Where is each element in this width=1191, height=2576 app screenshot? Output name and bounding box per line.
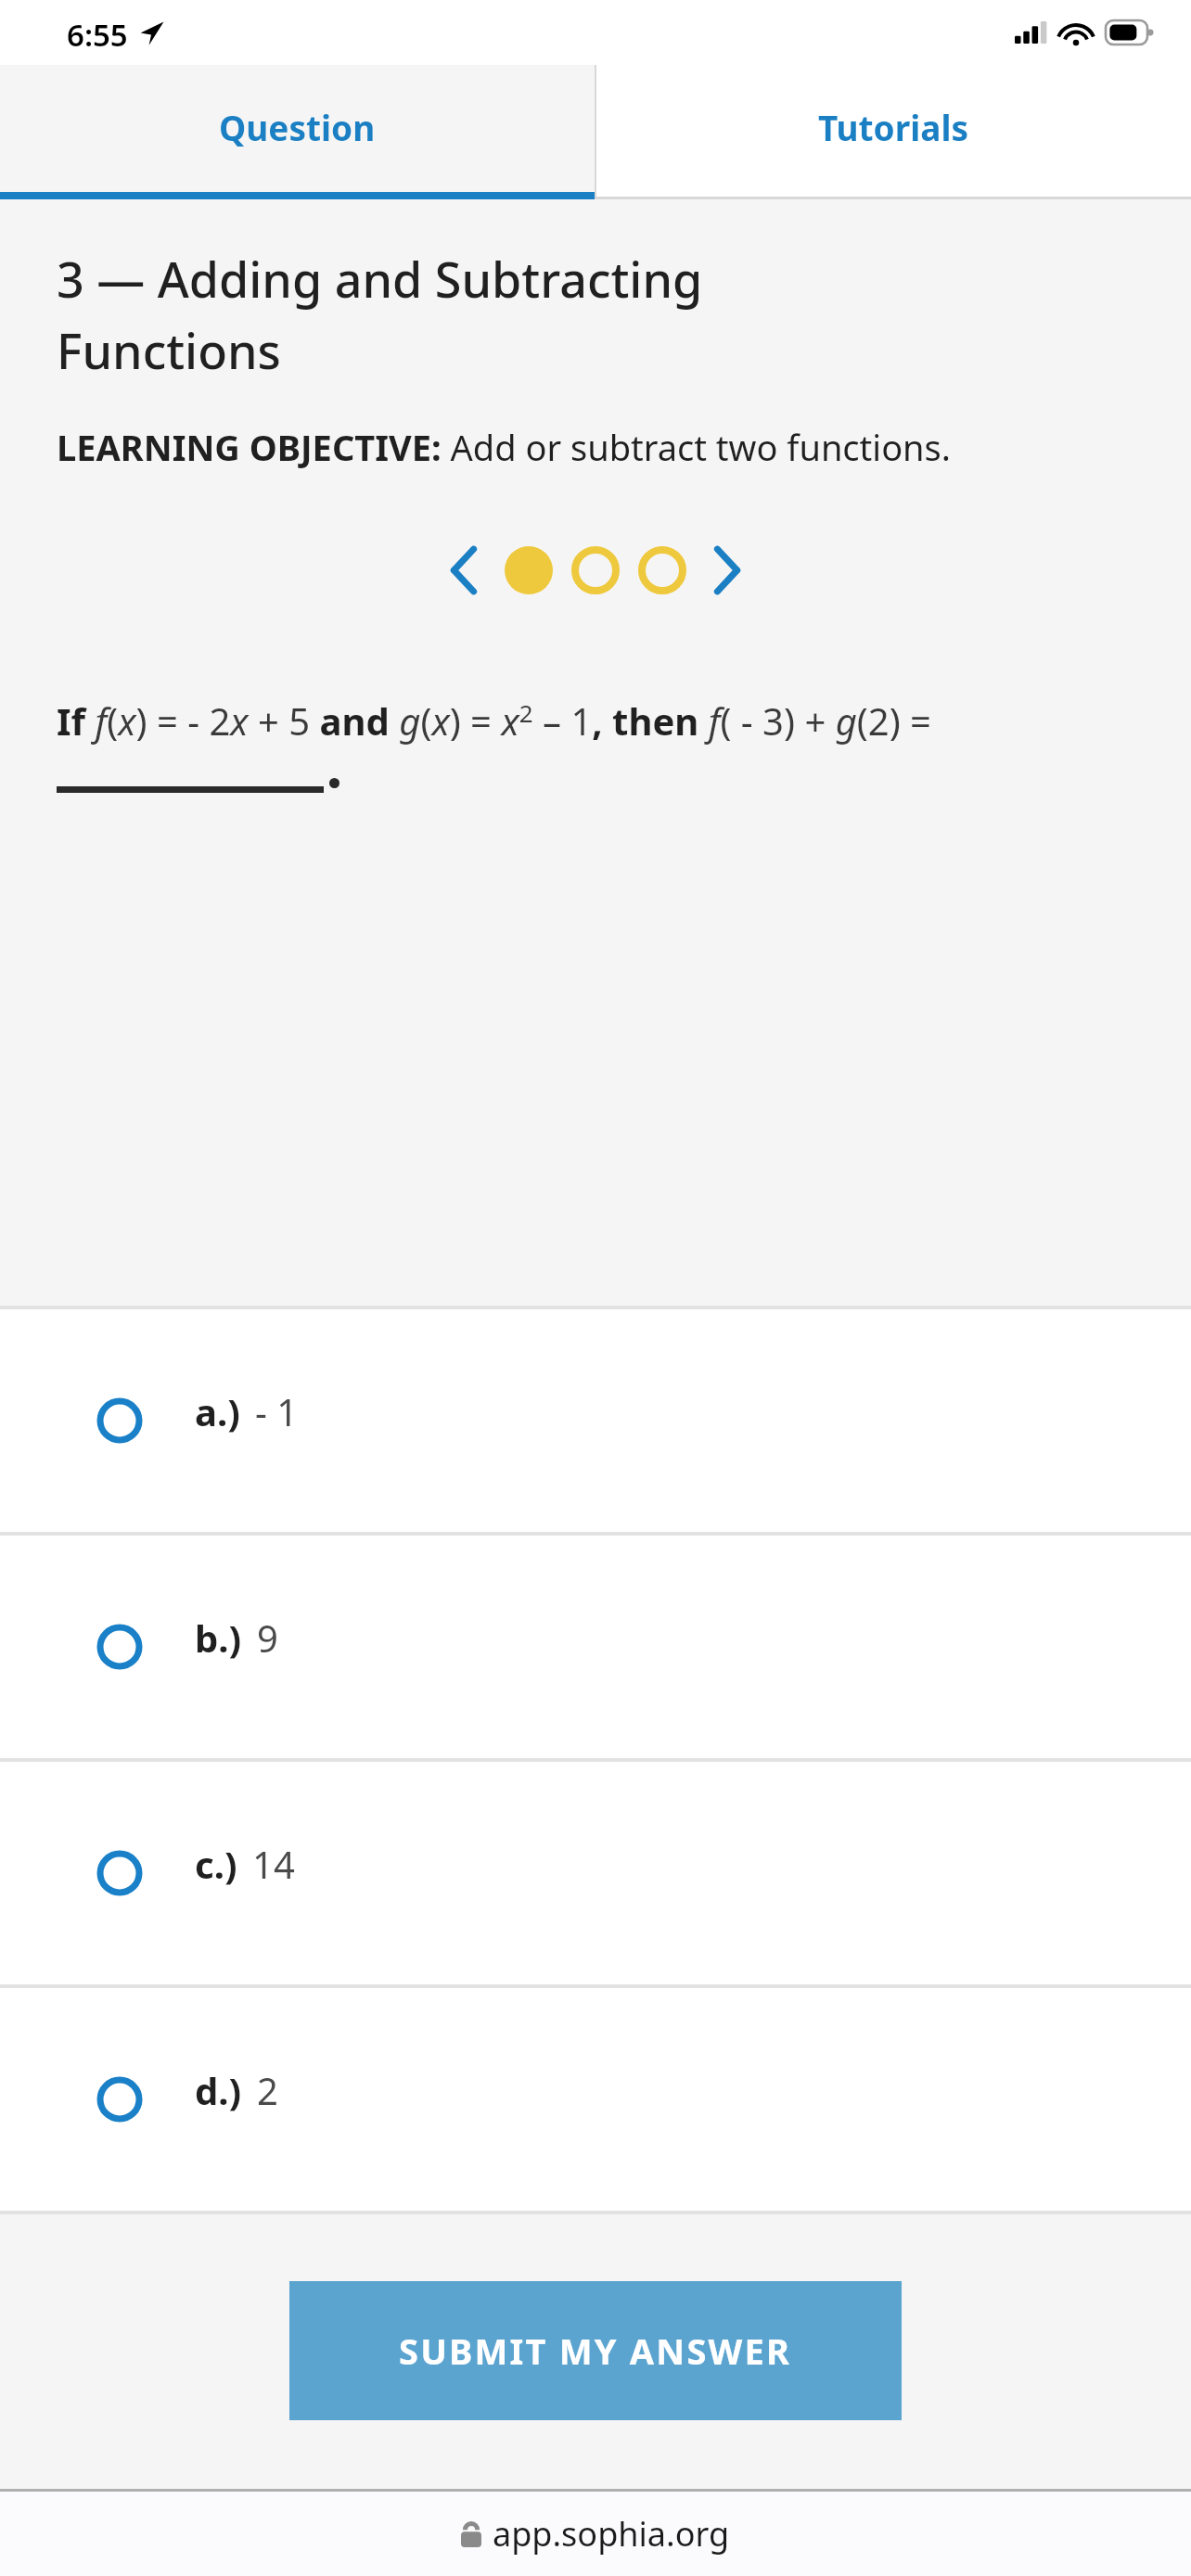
button[interactable]: SUBMIT MY ANSWER — [289, 2281, 902, 2420]
button[interactable]: Next — [701, 538, 753, 603]
staticText: b.) — [195, 1613, 242, 1663]
staticText: 9 — [257, 1613, 278, 1663]
staticText: c.) — [195, 1839, 237, 1889]
button[interactable]: c.) — [0, 1762, 1191, 1984]
staticText: Question — [219, 104, 376, 150]
staticText: Tutorials — [818, 104, 969, 150]
staticText: a.) — [195, 1386, 240, 1436]
staticText: d.) — [195, 2065, 242, 2115]
button[interactable]: a.) — [0, 1309, 1191, 1532]
staticText: If f(x) = - 2x + 5 and g(x) = x2 – 1, th… — [57, 695, 931, 746]
staticText: app.sophia.org — [493, 2511, 730, 2557]
staticText: SUBMIT MY ANSWER — [399, 2327, 792, 2375]
staticText: 14 — [252, 1839, 295, 1889]
button[interactable]: b.) — [0, 1536, 1191, 1758]
button[interactable]: Previous — [438, 538, 490, 603]
button[interactable] — [638, 546, 686, 594]
button[interactable]: Question — [0, 65, 595, 199]
button[interactable]: d.) — [0, 1988, 1191, 2211]
staticText: 2 — [257, 2065, 278, 2115]
staticText: - 1 — [255, 1386, 299, 1436]
staticText: LEARNING OBJECTIVE: Add or subtract two … — [57, 423, 951, 471]
button[interactable] — [505, 546, 553, 594]
button[interactable]: Tutorials — [596, 65, 1191, 199]
staticText: 3 — Adding and Subtracting Functions — [57, 246, 703, 383]
button[interactable] — [571, 546, 620, 594]
staticText: 6:55 — [67, 14, 128, 56]
